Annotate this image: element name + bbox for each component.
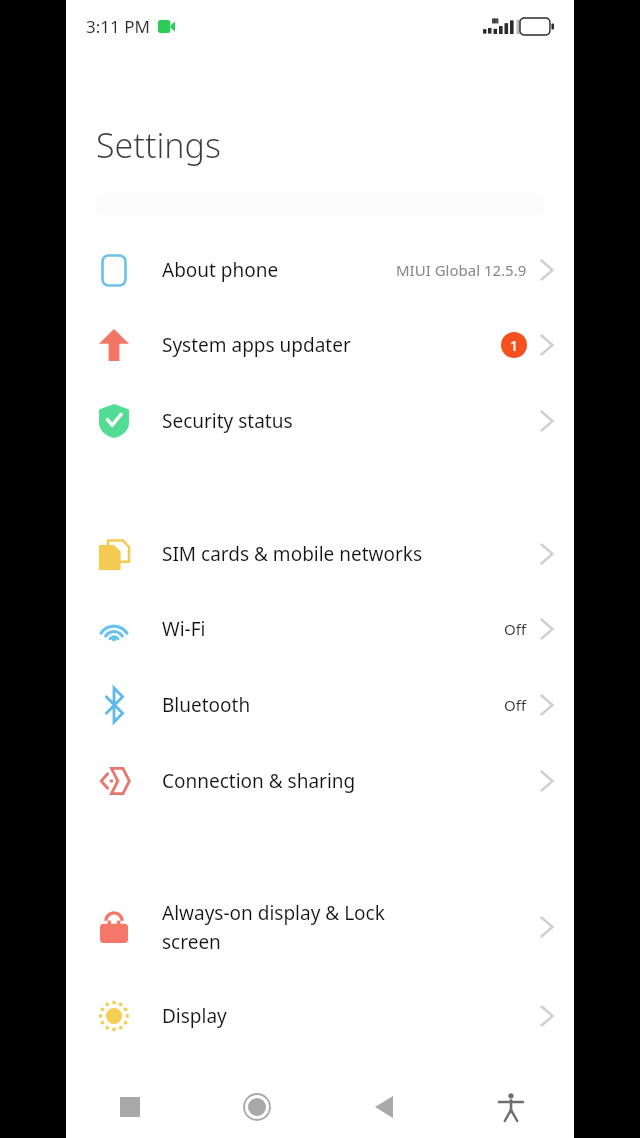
button[interactable]: Security status: [66, 385, 574, 457]
button[interactable]: Recents: [66, 1076, 193, 1138]
button[interactable]: Home: [193, 1076, 320, 1138]
button[interactable]: Back: [320, 1076, 447, 1138]
staticText: Off: [504, 695, 527, 715]
button[interactable]: Accessibility: [447, 1076, 574, 1138]
staticText: Security status: [162, 408, 293, 434]
button[interactable]: About phone: [66, 234, 574, 306]
button[interactable]: Bluetooth: [66, 669, 574, 741]
button[interactable]: System apps updater: [66, 309, 574, 381]
button[interactable]: Wi-Fi: [66, 593, 574, 665]
staticText: Always-on display & Lock: [162, 900, 385, 926]
staticText: Connection & sharing: [162, 768, 356, 794]
staticText: screen: [162, 929, 221, 955]
staticText: Bluetooth: [162, 692, 251, 718]
button[interactable]: Connection & sharing: [66, 745, 574, 817]
staticText: Off: [504, 619, 527, 639]
staticText: SIM cards & mobile networks: [162, 541, 423, 567]
staticText: About phone: [162, 257, 279, 283]
staticText: Wi-Fi: [162, 616, 206, 642]
button[interactable]: Always-on display & Lock: [66, 891, 574, 963]
staticText: Display: [162, 1003, 227, 1029]
button[interactable]: Display: [66, 980, 574, 1052]
staticText: 1: [510, 336, 519, 355]
button[interactable]: SIM cards & mobile networks: [66, 518, 574, 590]
staticText: 3:11 PM: [86, 15, 150, 38]
staticText: System apps updater: [162, 332, 351, 358]
staticText: MIUI Global 12.5.9: [396, 260, 527, 280]
staticText: Settings: [96, 122, 221, 168]
